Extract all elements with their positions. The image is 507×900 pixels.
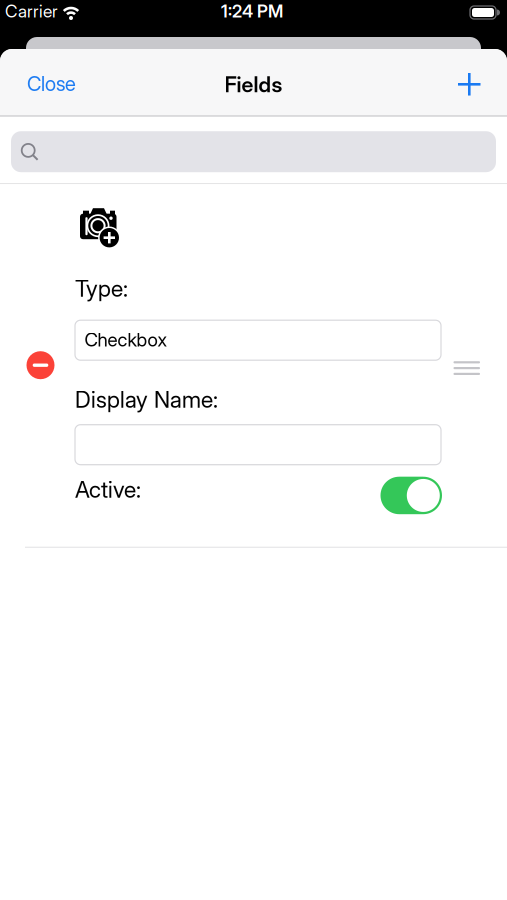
staticText: Carrier (5, 1, 58, 21)
button[interactable]: Add Photo (80, 208, 121, 249)
staticText: Checkbox (84, 329, 166, 351)
button[interactable]: Add (448, 61, 492, 103)
staticText: Display Name: (75, 386, 218, 413)
staticText: Active: (75, 476, 141, 503)
button[interactable]: Close (0, 49, 86, 104)
staticText: Close (27, 72, 76, 96)
staticText: 1:24 PM (221, 1, 283, 21)
button[interactable]: Delete (26, 351, 54, 379)
staticText: Type: (75, 275, 128, 302)
staticText: Fields (224, 72, 282, 97)
button[interactable]: Checkbox (75, 320, 441, 360)
button[interactable]: Display Name (75, 425, 441, 465)
button[interactable]: Search (11, 131, 496, 172)
button[interactable]: Active (380, 477, 442, 514)
button[interactable]: Reorder (453, 361, 480, 375)
